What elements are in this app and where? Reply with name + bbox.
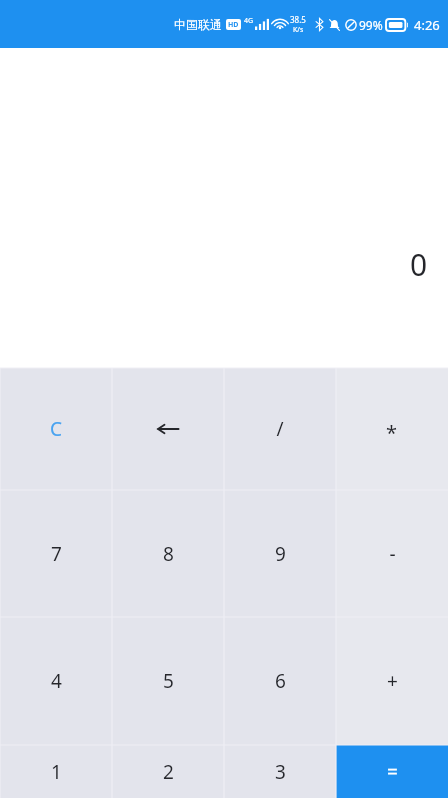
staticText: * xyxy=(386,419,398,446)
staticText: 6 xyxy=(275,668,286,694)
staticText: 0 xyxy=(410,244,428,285)
button[interactable]: 8 xyxy=(112,490,224,617)
button[interactable]: C xyxy=(0,368,112,490)
staticText: 4G xyxy=(244,16,254,26)
button[interactable]: 9 xyxy=(224,490,336,617)
button[interactable]: 6 xyxy=(224,617,336,745)
button[interactable]: 2 xyxy=(112,745,224,798)
staticText: 5 xyxy=(163,668,174,694)
staticText: 3 xyxy=(275,759,286,785)
staticText: 1 xyxy=(51,759,62,785)
staticText: / xyxy=(276,416,284,442)
button[interactable]: 3 xyxy=(224,745,336,798)
staticText: 8 xyxy=(163,541,174,567)
staticText: 99% xyxy=(359,17,383,33)
staticText: = xyxy=(387,759,398,785)
staticText: 38.5 xyxy=(290,14,306,25)
staticText: + xyxy=(387,668,398,694)
staticText: 9 xyxy=(275,541,286,567)
staticText: K/s xyxy=(293,25,304,35)
button[interactable]: 5 xyxy=(112,617,224,745)
staticText: 4 xyxy=(51,668,62,694)
button[interactable]: 1 xyxy=(0,745,112,798)
staticText: C xyxy=(50,416,63,442)
staticText: 4:26 xyxy=(414,16,440,34)
button[interactable]: 4 xyxy=(0,617,112,745)
button[interactable]: - xyxy=(336,490,448,617)
staticText: - xyxy=(389,541,396,567)
button[interactable]: * xyxy=(336,368,448,490)
button[interactable]: Backspace xyxy=(112,368,224,490)
staticText: 2 xyxy=(163,759,174,785)
staticText: HD xyxy=(228,20,239,30)
button[interactable]: / xyxy=(224,368,336,490)
staticText: 中国联通 xyxy=(174,17,222,32)
button[interactable]: + xyxy=(336,617,448,745)
staticText: 7 xyxy=(51,541,62,567)
button[interactable]: = xyxy=(336,745,448,798)
button[interactable]: 7 xyxy=(0,490,112,617)
